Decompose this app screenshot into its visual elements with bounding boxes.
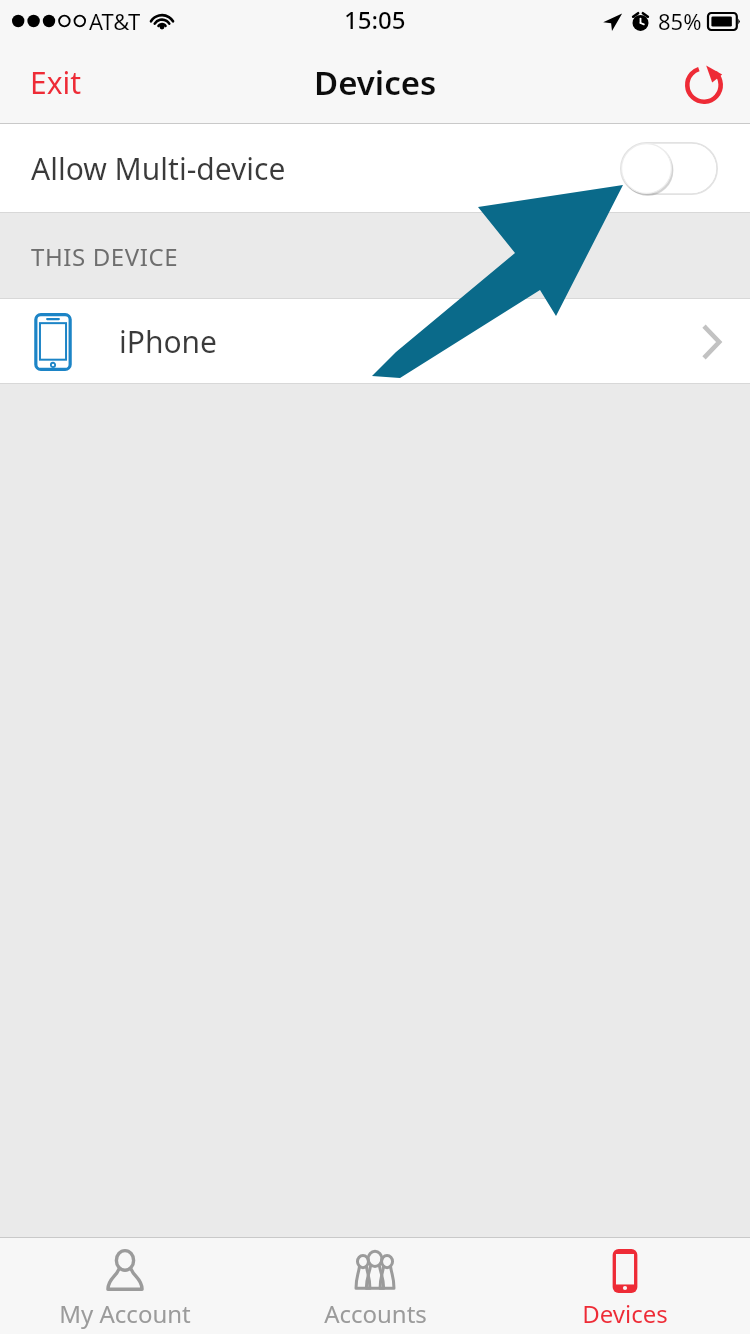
staticText: My Account [59,1297,191,1330]
staticText: THIS DEVICE [31,240,179,273]
staticText: Devices [582,1297,668,1330]
staticText: Allow Multi-device [31,148,286,189]
button[interactable]: Accounts [250,1238,500,1334]
button[interactable]: Exit [14,52,98,113]
staticText: Exit [30,62,82,103]
button[interactable]: Devices [500,1238,750,1334]
staticText: 85% [658,6,702,36]
staticText: 15:05 [344,3,406,36]
staticText: Devices [314,60,437,105]
button[interactable]: Allow Multi-device [0,124,750,213]
button[interactable]: iPhone [0,299,750,384]
staticText: AT&T [89,6,141,36]
staticText: iPhone [119,321,218,362]
button[interactable]: Refresh [674,53,734,113]
button[interactable]: My Account [0,1238,250,1334]
staticText: Accounts [324,1297,427,1330]
button[interactable]: Allow Multi-device toggle [620,142,718,195]
